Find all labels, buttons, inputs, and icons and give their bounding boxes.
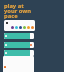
button[interactable]	[4, 33, 34, 39]
button[interactable]	[4, 20, 35, 31]
button[interactable]	[4, 50, 34, 56]
staticText: play at your own pace	[4, 2, 32, 20]
button[interactable]	[4, 42, 34, 48]
